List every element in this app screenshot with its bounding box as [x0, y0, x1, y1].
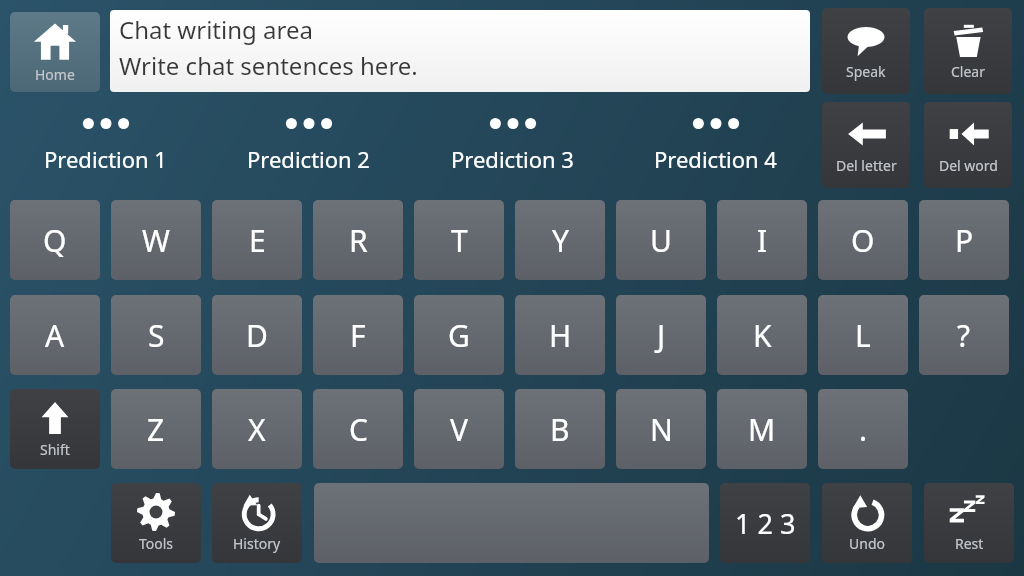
staticText: Home — [35, 65, 75, 84]
button[interactable]: N — [616, 389, 706, 469]
button[interactable]: B — [515, 389, 605, 469]
staticText: S — [148, 315, 165, 356]
button[interactable]: J — [616, 295, 706, 375]
button[interactable]: Z — [111, 389, 201, 469]
button[interactable]: T — [414, 200, 504, 280]
button[interactable]: P — [919, 200, 1009, 280]
staticText: Clear — [951, 62, 985, 81]
button[interactable]: Q — [10, 200, 100, 280]
staticText: Q — [43, 220, 67, 261]
staticText: L — [855, 315, 871, 356]
button[interactable]: ? — [919, 295, 1009, 375]
staticText: J — [657, 315, 666, 356]
staticText: Rest — [955, 534, 984, 553]
button[interactable]: V — [414, 389, 504, 469]
staticText: History — [233, 534, 281, 553]
button[interactable]: Undo — [822, 483, 912, 563]
staticText: A — [45, 315, 65, 356]
staticText: C — [349, 409, 368, 450]
button[interactable]: Chat writing area — [110, 10, 810, 92]
button[interactable]: L — [818, 295, 908, 375]
staticText: F — [350, 315, 366, 356]
button[interactable]: Prediction 4 — [620, 104, 810, 188]
staticText: M — [748, 409, 776, 450]
button[interactable]: I — [717, 200, 807, 280]
button[interactable]: R — [313, 200, 403, 280]
staticText: O — [851, 220, 875, 261]
staticText: B — [550, 409, 570, 450]
button[interactable]: Del word — [924, 102, 1012, 188]
button[interactable]: E — [212, 200, 302, 280]
button[interactable]: Prediction 3 — [417, 104, 607, 188]
button[interactable]: O — [818, 200, 908, 280]
staticText: P — [955, 220, 974, 261]
button[interactable]: H — [515, 295, 605, 375]
button[interactable]: Shift — [10, 389, 100, 469]
button[interactable]: Prediction 2 — [213, 104, 403, 188]
staticText: Shift — [40, 440, 70, 459]
staticText: Prediction 3 — [451, 144, 574, 174]
button[interactable]: S — [111, 295, 201, 375]
staticText: N — [650, 409, 673, 450]
staticText: X — [248, 409, 266, 450]
button[interactable]: X — [212, 389, 302, 469]
staticText: I — [757, 220, 768, 261]
button[interactable]: D — [212, 295, 302, 375]
button[interactable]: Space — [314, 483, 709, 563]
button[interactable]: History — [212, 483, 302, 563]
staticText: U — [650, 220, 672, 261]
staticText: E — [249, 220, 266, 261]
staticText: Tools — [139, 534, 174, 553]
button[interactable]: . — [818, 389, 908, 469]
button[interactable]: Tools — [111, 483, 201, 563]
staticText: Prediction 4 — [654, 144, 777, 174]
staticText: R — [349, 220, 368, 261]
staticText: Write chat sentences here. — [119, 49, 418, 82]
staticText: . — [859, 409, 868, 450]
button[interactable]: C — [313, 389, 403, 469]
staticText: V — [450, 409, 468, 450]
button[interactable]: Speak — [822, 8, 910, 94]
staticText: Undo — [849, 534, 885, 553]
staticText: H — [549, 315, 572, 356]
staticText: K — [753, 315, 772, 356]
staticText: T — [451, 220, 468, 261]
staticText: W — [142, 220, 170, 261]
button[interactable]: Rest — [924, 483, 1014, 563]
staticText: Del word — [939, 156, 998, 175]
button[interactable]: G — [414, 295, 504, 375]
button[interactable]: M — [717, 389, 807, 469]
button[interactable]: A — [10, 295, 100, 375]
button[interactable]: Y — [515, 200, 605, 280]
staticText: Y — [552, 220, 569, 261]
button[interactable]: F — [313, 295, 403, 375]
staticText: Speak — [846, 62, 886, 81]
button[interactable]: W — [111, 200, 201, 280]
staticText: Prediction 2 — [247, 144, 370, 174]
staticText: ? — [957, 315, 971, 356]
button[interactable]: Prediction 1 — [10, 104, 200, 188]
button[interactable]: Del letter — [822, 102, 910, 188]
button[interactable]: 1 2 3 — [720, 483, 810, 563]
staticText: G — [448, 315, 470, 356]
staticText: 1 2 3 — [735, 505, 796, 542]
button[interactable]: U — [616, 200, 706, 280]
button[interactable]: Home — [10, 12, 100, 92]
staticText: Chat writing area — [119, 13, 313, 46]
staticText: Del letter — [836, 156, 897, 175]
button[interactable]: Clear — [924, 8, 1012, 94]
staticText: D — [246, 315, 268, 356]
staticText: Z — [147, 409, 165, 450]
staticText: Prediction 1 — [44, 144, 167, 174]
button[interactable]: K — [717, 295, 807, 375]
